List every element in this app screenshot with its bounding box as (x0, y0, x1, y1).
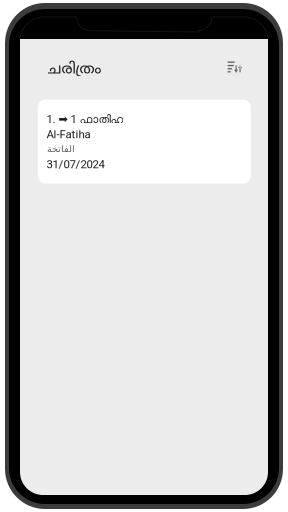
staticText: ചരിത്രം (47, 60, 101, 79)
staticText: 1. ➡ 1 ഫാതിഹ (46, 113, 123, 126)
button[interactable]: Sort (222, 54, 248, 80)
staticText: الفاتحة (46, 143, 74, 155)
staticText: 31/07/2024 (46, 157, 104, 171)
staticText: Al-Fatiha (46, 127, 90, 141)
button[interactable]: 1. ➡ 1 ഫാതിഹ (38, 99, 251, 183)
